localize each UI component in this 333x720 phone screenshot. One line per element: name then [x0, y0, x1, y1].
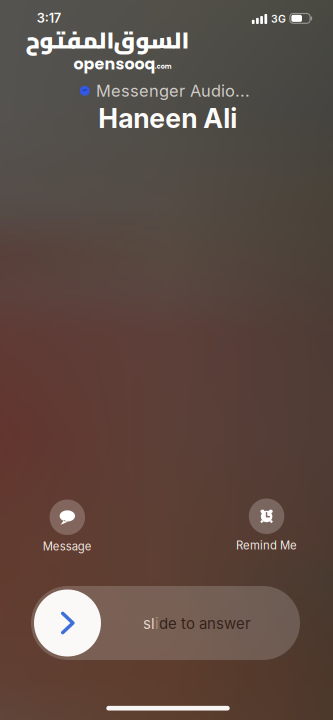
- button[interactable]: Remind Me: [219, 498, 315, 551]
- staticText: Remind Me: [236, 539, 297, 552]
- staticText: المفتوح: [25, 18, 114, 61]
- staticText: Message: [43, 540, 92, 553]
- staticText: i: [155, 614, 159, 633]
- staticText: de to answer: [159, 614, 251, 633]
- staticText: Haneen Ali: [98, 102, 237, 134]
- staticText: 3G: [271, 13, 286, 25]
- staticText: Messenger Audio...: [96, 81, 250, 101]
- staticText: opensooq: [73, 53, 155, 75]
- staticText: 3:17: [37, 10, 61, 26]
- staticText: .com: [155, 62, 172, 71]
- button[interactable]: sl: [31, 586, 300, 660]
- button[interactable]: Message: [19, 499, 115, 552]
- staticText: sl: [143, 614, 155, 633]
- staticText: السوق: [113, 18, 189, 61]
